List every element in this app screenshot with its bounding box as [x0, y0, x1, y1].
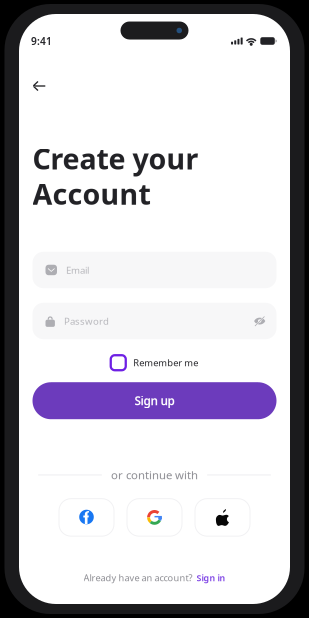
button[interactable]: Sign in	[196, 572, 225, 584]
staticText: 9:41	[31, 34, 52, 48]
button[interactable]: Back	[19, 73, 58, 99]
staticText: Already have an account?	[83, 571, 192, 584]
staticText: Sign up	[134, 393, 174, 409]
button[interactable]: Remember me	[111, 355, 198, 370]
staticText: Sign in	[196, 572, 225, 584]
button[interactable]: Continue with Facebook	[59, 499, 114, 536]
staticText: or continue with	[111, 467, 198, 483]
staticText: Create your	[32, 139, 198, 178]
staticText: Account	[32, 174, 150, 213]
button[interactable]: Continue with Apple	[195, 499, 250, 536]
staticText: Password	[64, 314, 109, 327]
staticText: Remember me	[133, 356, 198, 369]
button[interactable]: Sign up	[32, 382, 276, 419]
staticText: Email	[66, 263, 89, 276]
button[interactable]: Continue with Google	[127, 499, 182, 536]
